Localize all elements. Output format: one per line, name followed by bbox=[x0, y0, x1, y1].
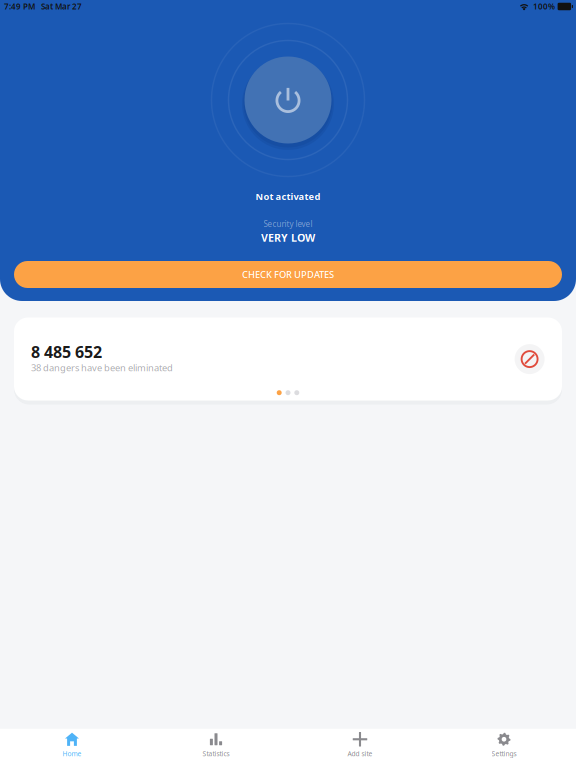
staticText: Not activated bbox=[255, 190, 320, 203]
button[interactable]: Settings bbox=[432, 728, 576, 768]
button[interactable]: Statistics bbox=[144, 728, 288, 768]
button[interactable]: CHECK FOR UPDATES bbox=[14, 261, 562, 288]
staticText: 7:49 PM bbox=[4, 1, 35, 12]
staticText: Sat Mar 27 bbox=[41, 1, 82, 12]
staticText: 8 485 652 bbox=[31, 341, 102, 362]
staticText: Statistics bbox=[202, 749, 229, 758]
staticText: 100% bbox=[533, 1, 555, 12]
staticText: Home bbox=[62, 749, 81, 758]
staticText: VERY LOW bbox=[261, 230, 315, 245]
button[interactable]: Add site bbox=[288, 728, 432, 768]
staticText: Settings bbox=[491, 749, 516, 758]
staticText: 38 dangers have been eliminated bbox=[31, 361, 173, 374]
button[interactable]: Home bbox=[0, 728, 144, 768]
staticText: CHECK FOR UPDATES bbox=[242, 268, 334, 281]
staticText: Add site bbox=[347, 749, 372, 758]
staticText: Security level bbox=[263, 219, 312, 229]
